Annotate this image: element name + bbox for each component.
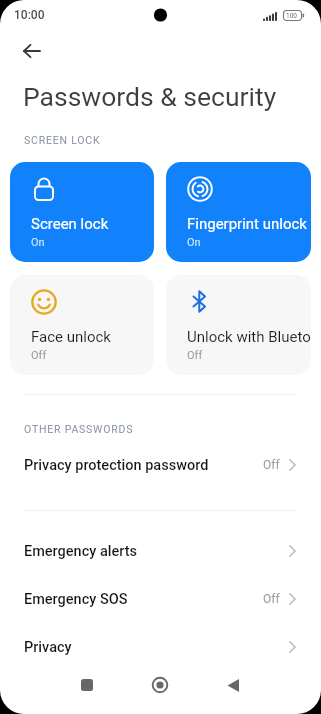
button[interactable]: [213, 665, 253, 705]
staticText: 100: [286, 12, 297, 20]
staticText: Emergency alerts: [24, 543, 289, 560]
staticText: SCREEN LOCK: [24, 134, 101, 146]
staticText: Off: [187, 349, 203, 362]
staticText: Screen lock: [31, 215, 109, 233]
button[interactable]: Emergency SOS: [0, 575, 321, 623]
staticText: On: [187, 236, 201, 249]
button[interactable]: Privacy: [0, 623, 321, 671]
staticText: Privacy: [24, 639, 289, 656]
button[interactable]: Face unlock: [10, 275, 154, 375]
staticText: Face unlock: [31, 328, 111, 346]
staticText: Off: [31, 349, 47, 362]
staticText: OTHER PASSWORDS: [24, 423, 134, 435]
button[interactable]: [67, 665, 107, 705]
staticText: On: [31, 236, 45, 249]
staticText: Off: [263, 592, 280, 606]
button[interactable]: Fingerprint unlock: [166, 162, 311, 262]
button[interactable]: Unlock with Bluetooth device: [166, 275, 311, 375]
button[interactable]: Screen lock: [10, 162, 154, 262]
button[interactable]: Privacy protection password: [0, 441, 321, 489]
button[interactable]: [14, 33, 50, 69]
staticText: Off: [263, 458, 280, 472]
button[interactable]: Emergency alerts: [0, 527, 321, 575]
staticText: Emergency SOS: [24, 591, 263, 608]
staticText: 10:00: [14, 8, 45, 22]
staticText: Privacy protection password: [24, 457, 263, 474]
staticText: Unlock with Bluetooth device: [187, 328, 311, 346]
staticText: Passwords & security: [23, 81, 277, 112]
button[interactable]: [140, 665, 180, 705]
staticText: Fingerprint unlock: [187, 215, 307, 233]
